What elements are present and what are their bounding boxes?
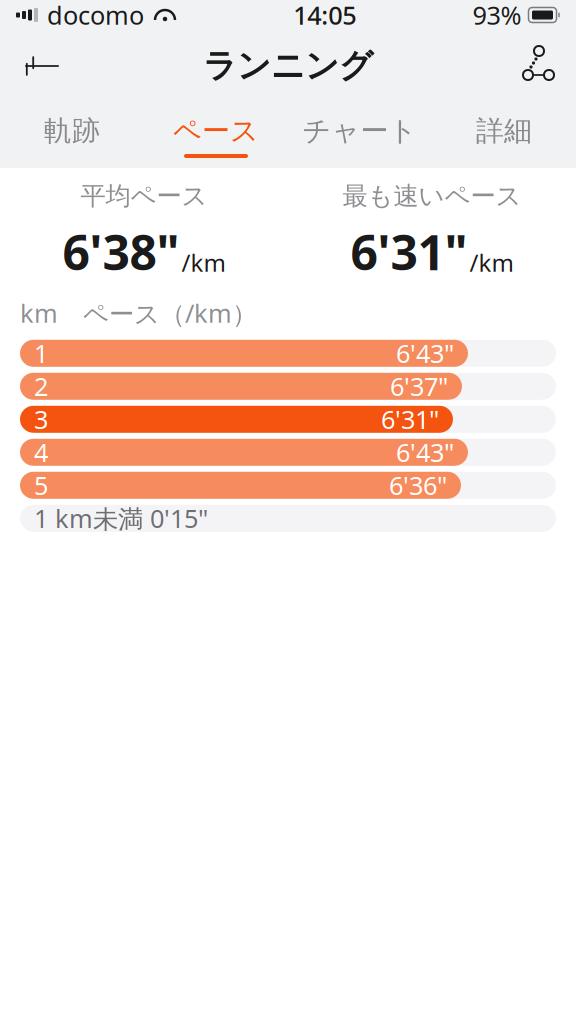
staticText: 軌跡 — [44, 114, 100, 148]
staticText: 6'37" — [390, 369, 448, 403]
staticText: /km — [181, 247, 225, 278]
staticText: docomo — [47, 0, 144, 32]
staticText: 4 — [34, 435, 48, 469]
staticText: 1 km未満 0'15" — [34, 501, 208, 535]
staticText: 3 — [34, 402, 48, 436]
button[interactable]: 共有 — [504, 36, 564, 96]
staticText: 2 — [34, 369, 48, 403]
staticText: 6'31" — [350, 220, 467, 283]
staticText: 6'43" — [396, 336, 454, 370]
staticText: 最も速いペース — [342, 181, 521, 212]
staticText: ランニング — [203, 45, 373, 86]
staticText: 6'31" — [381, 402, 439, 436]
staticText: 詳細 — [476, 114, 532, 148]
button[interactable]: ペース — [144, 102, 288, 168]
button[interactable]: チャート — [288, 102, 432, 168]
button[interactable]: 詳細 — [432, 102, 576, 168]
staticText: チャート — [302, 114, 417, 148]
staticText: ペース — [173, 114, 259, 148]
button[interactable]: 軌跡 — [0, 102, 144, 168]
staticText: 6'43" — [396, 435, 454, 469]
staticText: 平均ペース — [80, 181, 207, 212]
staticText: 14:05 — [293, 0, 356, 32]
staticText: 6'38" — [62, 220, 179, 283]
staticText: 6'36" — [389, 468, 447, 502]
staticText: 93% — [472, 0, 521, 32]
staticText: 1 — [34, 336, 48, 370]
staticText: 5 — [34, 468, 48, 502]
staticText: /km — [469, 247, 513, 278]
button[interactable]: 戻る — [12, 36, 72, 96]
staticText: km ペース（/km） — [20, 296, 257, 330]
